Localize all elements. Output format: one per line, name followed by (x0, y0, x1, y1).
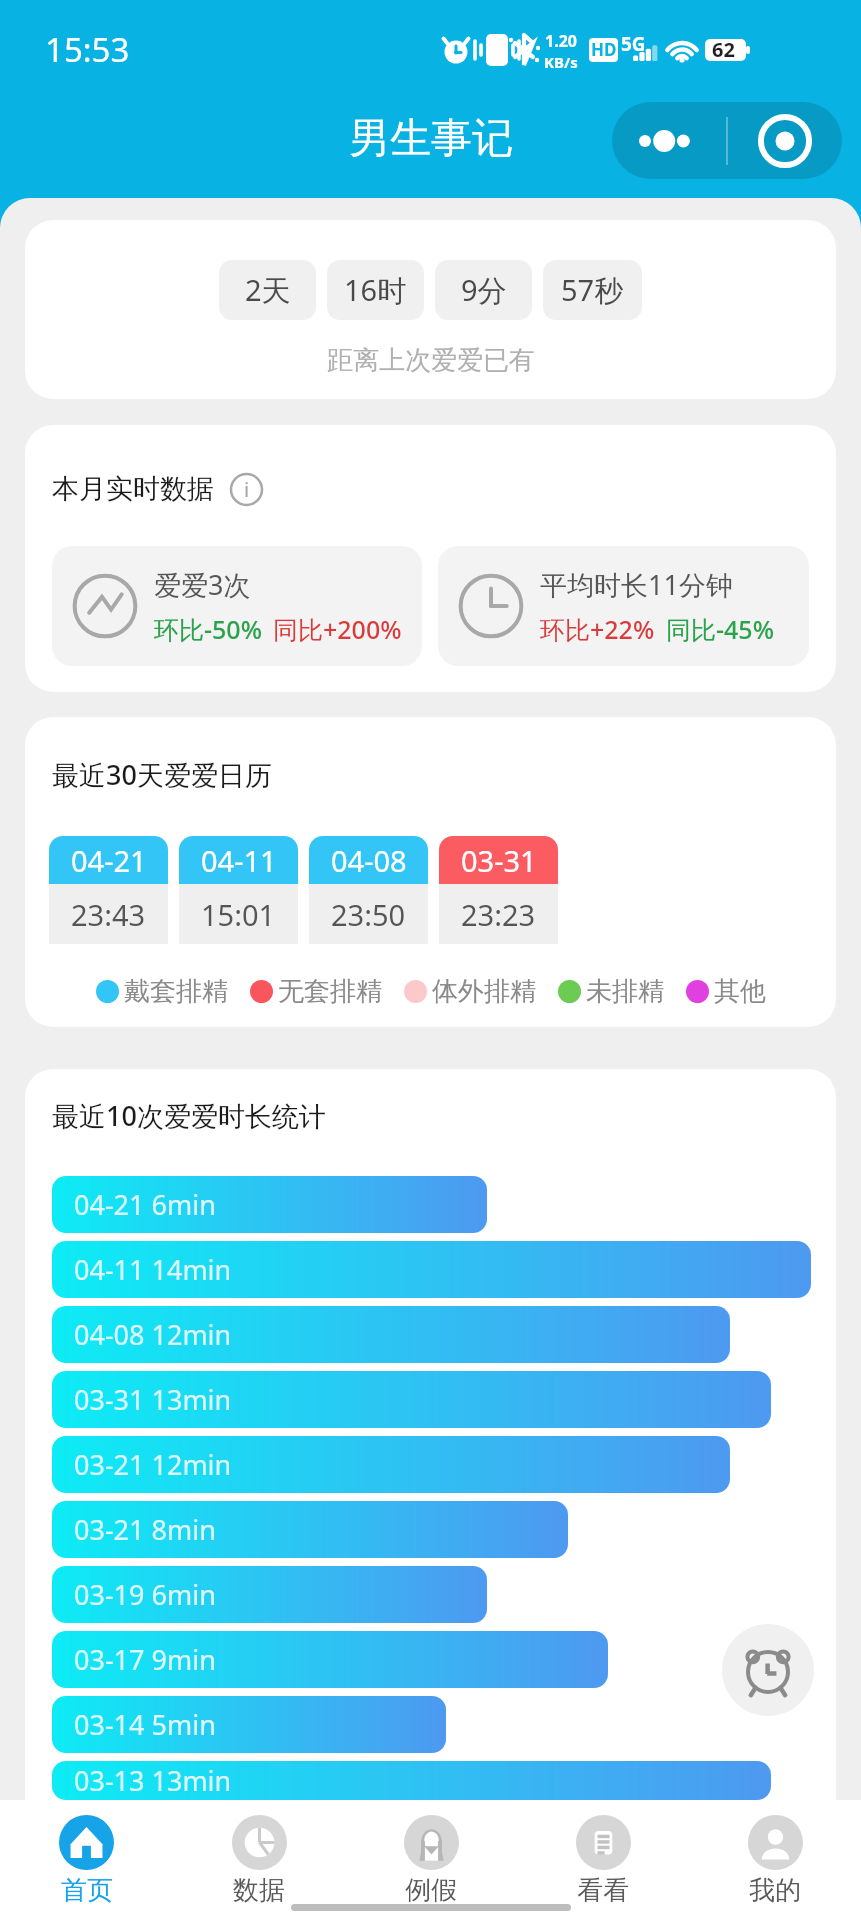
button[interactable]: 03-21 12min (52, 1436, 730, 1493)
button[interactable]: Info (230, 473, 263, 506)
staticText: 同比+200% (273, 612, 402, 646)
staticText: 环比-50% (154, 612, 262, 646)
staticText: 看看 (577, 1874, 629, 1907)
button[interactable]: 04-11 14min (52, 1241, 811, 1298)
button[interactable]: 2天 (219, 260, 316, 320)
staticText: 62 (712, 36, 735, 63)
staticText: 04-21 (71, 841, 147, 880)
staticText: 23:43 (71, 895, 146, 934)
staticText: 平均时长11分钟 (540, 566, 733, 603)
staticText: 5G (621, 31, 646, 57)
staticText: 03-14 5min (74, 1706, 216, 1743)
button[interactable]: 03-13 13min (52, 1761, 771, 1800)
staticText: 04-08 12min (74, 1316, 232, 1353)
staticText: 03-31 13min (74, 1381, 232, 1418)
staticText: 03-21 8min (74, 1511, 216, 1548)
staticText: 9分 (461, 270, 507, 310)
button[interactable]: 未排精 (558, 975, 664, 1008)
button[interactable]: 16时 (327, 260, 424, 320)
button[interactable]: 03-31 (439, 836, 558, 944)
button[interactable]: 体外排精 (404, 975, 536, 1008)
staticText: 15:53 (45, 27, 130, 72)
staticText: 本月实时数据 (52, 472, 214, 506)
staticText: 最近10次爱爱时长统计 (52, 1097, 326, 1134)
button[interactable]: 戴套排精 (96, 975, 228, 1008)
button[interactable]: 看看 (517, 1800, 689, 1920)
staticText: 男生事记 (349, 113, 513, 165)
button[interactable]: 04-08 12min (52, 1306, 730, 1363)
button[interactable]: 9分 (435, 260, 532, 320)
staticText: 数据 (233, 1874, 285, 1907)
button[interactable]: 其他 (686, 975, 766, 1008)
button[interactable]: 例假 (345, 1800, 517, 1920)
button[interactable]: 爱爱3次 (52, 546, 422, 666)
staticText: 03-21 12min (74, 1446, 232, 1483)
staticText: 我的 (749, 1874, 801, 1907)
staticText: 例假 (405, 1874, 457, 1907)
staticText: 16时 (344, 270, 407, 310)
staticText: HD (591, 38, 617, 61)
staticText: 23:23 (461, 895, 536, 934)
staticText: 15:01 (201, 895, 276, 934)
button[interactable]: 03-19 6min (52, 1566, 487, 1623)
button[interactable]: 04-21 (49, 836, 168, 944)
staticText: 1.20 (545, 30, 577, 52)
staticText: 距离上次爱爱已有 (327, 344, 535, 377)
button[interactable]: 03-14 5min (52, 1696, 446, 1753)
button[interactable]: 57秒 (543, 260, 642, 320)
staticText: 无套排精 (278, 975, 382, 1008)
button[interactable]: 03-17 9min (52, 1631, 608, 1688)
staticText: 环比+22% (540, 612, 655, 646)
staticText: i (244, 476, 250, 503)
button[interactable]: 无套排精 (250, 975, 382, 1008)
button[interactable]: 03-31 13min (52, 1371, 771, 1428)
staticText: 同比-45% (666, 612, 774, 646)
staticText: 其他 (714, 975, 766, 1008)
staticText: 爱爱3次 (154, 566, 251, 603)
staticText: 23:50 (331, 895, 406, 934)
staticText: 04-08 (331, 841, 407, 880)
button[interactable]: 首页 (0, 1800, 173, 1920)
staticText: 04-11 14min (74, 1251, 232, 1288)
button[interactable]: More (612, 102, 842, 179)
button[interactable]: 04-11 (179, 836, 298, 944)
staticText: 04-21 6min (74, 1186, 216, 1223)
button[interactable]: 04-21 6min (52, 1176, 487, 1233)
button[interactable]: 数据 (173, 1800, 345, 1920)
button[interactable]: Reminder (722, 1624, 814, 1716)
staticText: 体外排精 (432, 975, 536, 1008)
staticText: 57秒 (561, 270, 624, 310)
staticText: KB/s (544, 52, 578, 72)
staticText: 戴套排精 (124, 975, 228, 1008)
staticText: 未排精 (586, 975, 664, 1008)
staticText: 首页 (61, 1874, 113, 1907)
staticText: 03-13 13min (74, 1762, 232, 1799)
staticText: 03-31 (461, 841, 537, 880)
button[interactable]: 03-21 8min (52, 1501, 568, 1558)
staticText: 2天 (245, 270, 291, 310)
button[interactable]: 我的 (689, 1800, 861, 1920)
staticText: 最近30天爱爱日历 (52, 756, 272, 793)
staticText: 03-17 9min (74, 1641, 216, 1678)
staticText: 04-11 (201, 841, 277, 880)
button[interactable]: 04-08 (309, 836, 428, 944)
button[interactable]: 平均时长11分钟 (438, 546, 809, 666)
staticText: 03-19 6min (74, 1576, 216, 1613)
